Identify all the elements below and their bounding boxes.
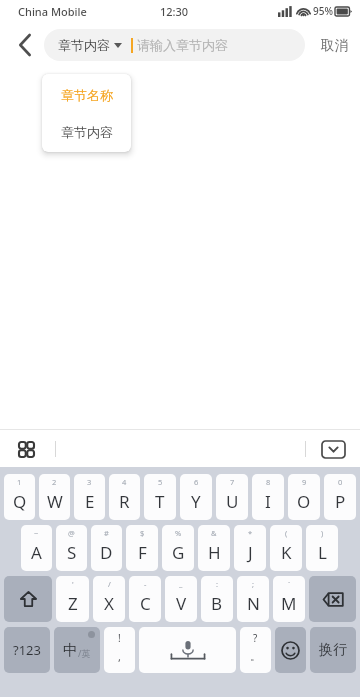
staticText: 3 [87, 477, 92, 487]
staticText: 6 [194, 477, 199, 487]
button[interactable]: 取消 [317, 31, 352, 60]
button[interactable]: * [234, 525, 266, 571]
staticText: ) [321, 528, 324, 538]
button[interactable]: ?123 [4, 627, 50, 673]
button[interactable]: / [93, 576, 125, 622]
button[interactable]: : [201, 576, 233, 622]
button[interactable]: Backspace [309, 576, 356, 622]
staticText: 95% [313, 4, 333, 18]
staticText: , [118, 649, 121, 664]
staticText: F [138, 541, 147, 564]
button[interactable]: 0 [324, 474, 356, 520]
staticText: P [335, 490, 346, 513]
staticText: & [211, 528, 217, 538]
button[interactable]: ; [237, 576, 269, 622]
staticText: M [281, 592, 297, 615]
staticText: X [104, 592, 114, 615]
button[interactable]: ` [273, 576, 305, 622]
staticText: A [31, 541, 42, 564]
staticText: T [155, 490, 165, 513]
staticText: $ [140, 528, 145, 538]
button[interactable]: 4 [109, 474, 140, 520]
button[interactable]: Back [8, 28, 42, 62]
button[interactable]: 3 [74, 474, 105, 520]
staticText: 换行 [319, 641, 347, 659]
staticText: 1 [17, 477, 22, 487]
staticText: China Mobile [18, 4, 87, 19]
staticText: Z [68, 592, 78, 615]
staticText: U [226, 490, 239, 513]
staticText: ~ [34, 528, 39, 538]
staticText: ?123 [13, 641, 41, 659]
button[interactable]: 章节内容 [42, 113, 131, 150]
button[interactable]: @ [56, 525, 87, 571]
staticText: % [175, 528, 182, 538]
button[interactable]: ~ [21, 525, 52, 571]
staticText: ( [285, 528, 288, 538]
staticText: Y [191, 490, 201, 513]
staticText: # [104, 528, 109, 538]
button[interactable]: Shift [4, 576, 52, 622]
staticText: K [281, 541, 292, 564]
staticText: 2 [52, 477, 57, 487]
staticText: - [144, 579, 147, 589]
staticText: 章节名称 [61, 87, 113, 103]
button[interactable]: ? [240, 627, 271, 673]
button[interactable]: ! [104, 627, 135, 673]
staticText: 。 [250, 649, 261, 663]
button[interactable]: $ [126, 525, 158, 571]
staticText: / [108, 579, 111, 589]
button[interactable]: 6 [180, 474, 212, 520]
staticText: W [47, 490, 63, 513]
staticText: 0 [338, 477, 343, 487]
button[interactable]: % [162, 525, 194, 571]
button[interactable]: 8 [252, 474, 284, 520]
staticText: B [211, 592, 223, 615]
staticText: 9 [302, 477, 307, 487]
staticText: H [208, 541, 221, 564]
button[interactable]: Space [139, 627, 236, 673]
button[interactable]: ' [56, 576, 89, 622]
staticText: * [248, 528, 253, 538]
button[interactable]: _ [165, 576, 197, 622]
staticText: ; [252, 579, 255, 589]
button[interactable]: 1 [4, 474, 35, 520]
button[interactable]: - [129, 576, 161, 622]
button[interactable]: Hide keyboard [318, 436, 348, 462]
button[interactable]: 5 [144, 474, 176, 520]
staticText: : [216, 579, 219, 589]
staticText: 7 [230, 477, 235, 487]
button[interactable]: 中 [54, 627, 100, 673]
button[interactable]: ) [306, 525, 338, 571]
staticText: R [119, 490, 130, 513]
staticText: O [297, 490, 311, 513]
staticText: 请输入章节内容 [137, 37, 228, 53]
button[interactable]: More tools [12, 435, 40, 463]
staticText: C [140, 592, 151, 615]
button[interactable]: 9 [288, 474, 320, 520]
staticText: 12:30 [160, 4, 189, 19]
button[interactable]: 章节内容 [58, 37, 122, 53]
staticText: 4 [122, 477, 127, 487]
staticText: 5 [158, 477, 163, 487]
staticText: E [85, 490, 95, 513]
button[interactable]: Emoji [275, 627, 306, 673]
staticText: ! [118, 631, 121, 645]
staticText: _ [179, 579, 183, 589]
staticText: 章节内容 [61, 124, 113, 140]
staticText: V [176, 592, 187, 615]
button[interactable]: 换行 [310, 627, 356, 673]
button[interactable]: # [91, 525, 122, 571]
staticText: /英 [78, 647, 91, 659]
button[interactable]: 章节名称 [42, 76, 131, 113]
button[interactable]: ( [270, 525, 302, 571]
button[interactable]: 2 [39, 474, 70, 520]
staticText: ? [253, 631, 258, 645]
button[interactable]: 7 [216, 474, 248, 520]
staticText: I [265, 490, 271, 513]
button[interactable]: & [198, 525, 230, 571]
staticText: ' [72, 579, 74, 589]
staticText: @ [68, 528, 75, 538]
staticText: 章节内容 [58, 37, 110, 53]
staticText: L [318, 541, 327, 564]
